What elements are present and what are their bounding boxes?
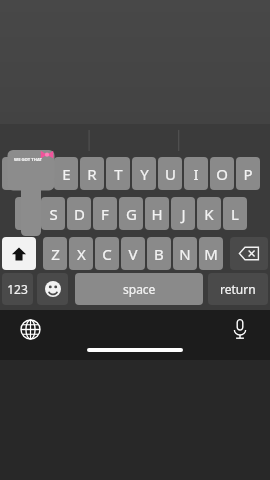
- button[interactable]: L: [223, 197, 247, 230]
- button[interactable]: Change keyboard: [14, 313, 46, 345]
- button[interactable]: Y: [132, 157, 156, 190]
- button[interactable]: S: [41, 197, 65, 230]
- button[interactable]: Emoji: [37, 273, 68, 305]
- button[interactable]: J: [171, 197, 195, 230]
- staticText: U: [165, 164, 176, 184]
- staticText: I: [193, 164, 199, 184]
- staticText: Y: [140, 164, 149, 184]
- staticText: N: [179, 244, 191, 264]
- staticText: O: [216, 164, 228, 184]
- staticText: S: [49, 204, 58, 224]
- button[interactable]: H: [145, 197, 169, 230]
- button[interactable]: G: [119, 197, 143, 230]
- button[interactable]: M: [199, 237, 223, 270]
- staticText: B: [154, 244, 164, 264]
- staticText: Z: [51, 244, 60, 264]
- button[interactable]: 123: [2, 273, 33, 305]
- button[interactable]: R: [80, 157, 104, 190]
- staticText: H: [151, 204, 163, 224]
- staticText: J: [181, 204, 186, 224]
- button[interactable]: Shift: [2, 237, 36, 270]
- staticText: K: [204, 204, 214, 224]
- button[interactable]: T: [106, 157, 130, 190]
- button[interactable]: space: [75, 273, 203, 305]
- button[interactable]: Q: [2, 157, 26, 190]
- button[interactable]: C: [95, 237, 119, 270]
- button[interactable]: V: [121, 237, 145, 270]
- staticText: return: [220, 281, 256, 297]
- button[interactable]: D: [67, 197, 91, 230]
- button[interactable]: B: [147, 237, 171, 270]
- staticText: space: [123, 281, 156, 297]
- staticText: 123: [7, 281, 28, 297]
- button[interactable]: U: [158, 157, 182, 190]
- staticText: P: [243, 164, 253, 184]
- staticText: T: [114, 164, 123, 184]
- staticText: V: [128, 244, 138, 264]
- staticText: R: [87, 164, 97, 184]
- staticText: G: [126, 204, 137, 224]
- button[interactable]: A: [15, 197, 39, 230]
- button[interactable]: Backspace: [230, 237, 268, 270]
- button[interactable]: P: [236, 157, 260, 190]
- staticText: F: [101, 204, 109, 224]
- button[interactable]: F: [93, 197, 117, 230]
- button[interactable]: E: [54, 157, 78, 190]
- button[interactable]: X: [69, 237, 93, 270]
- button[interactable]: Dictate: [224, 313, 256, 345]
- staticText: D: [74, 204, 85, 224]
- button[interactable]: I: [184, 157, 208, 190]
- button[interactable]: return: [208, 273, 268, 305]
- staticText: C: [102, 244, 112, 264]
- staticText: WE GOT THAT: [14, 157, 42, 163]
- staticText: M: [204, 244, 218, 264]
- staticText: L: [231, 204, 239, 224]
- staticText: E: [62, 164, 71, 184]
- button[interactable]: K: [197, 197, 221, 230]
- button[interactable]: O: [210, 157, 234, 190]
- button[interactable]: Z: [43, 237, 67, 270]
- staticText: X: [77, 244, 86, 264]
- button[interactable]: N: [173, 237, 197, 270]
- button[interactable]: W: [28, 157, 52, 190]
